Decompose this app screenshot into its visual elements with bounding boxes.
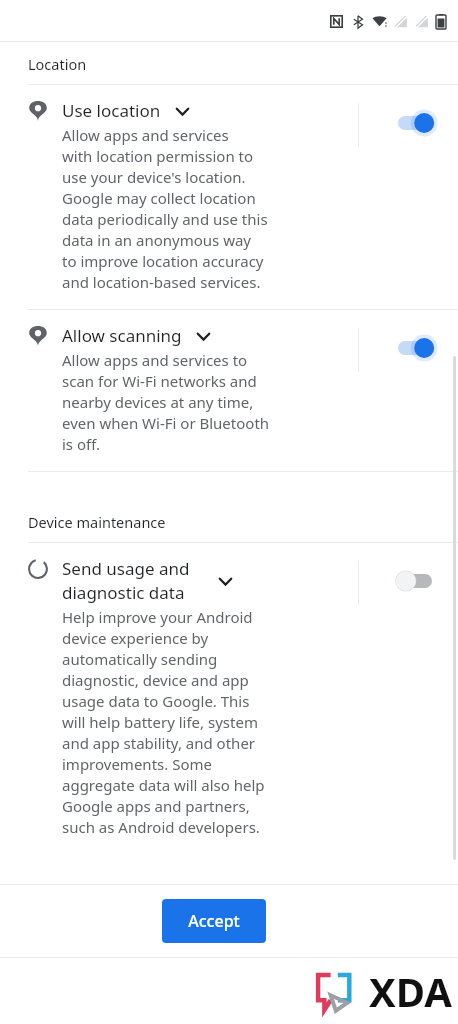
staticText: Use location (62, 99, 161, 122)
button[interactable]: Allow scanning (0, 310, 458, 471)
staticText: Device maintenance (28, 512, 166, 532)
staticText: Location (28, 54, 87, 74)
staticText: Send usage and diagnostic data (62, 557, 190, 604)
other: Expand (171, 100, 193, 122)
staticText: Accept (188, 910, 240, 932)
staticText: Help improve your Android device experie… (62, 607, 265, 838)
staticText: Allow apps and services to scan for Wi-F… (62, 350, 270, 455)
button[interactable]: Send usage and diagnostic data (0, 543, 458, 854)
button[interactable]: On (389, 106, 441, 140)
button[interactable]: Off (389, 564, 441, 598)
button[interactable]: On (389, 331, 441, 365)
staticText: XDA (369, 964, 452, 1018)
staticText: Allow apps and services with location pe… (62, 125, 268, 293)
staticText: Allow scanning (62, 324, 182, 347)
button[interactable]: Accept (162, 899, 266, 943)
other: Expand (192, 325, 214, 347)
button[interactable]: Use location (0, 85, 458, 309)
other: Expand (214, 570, 236, 592)
